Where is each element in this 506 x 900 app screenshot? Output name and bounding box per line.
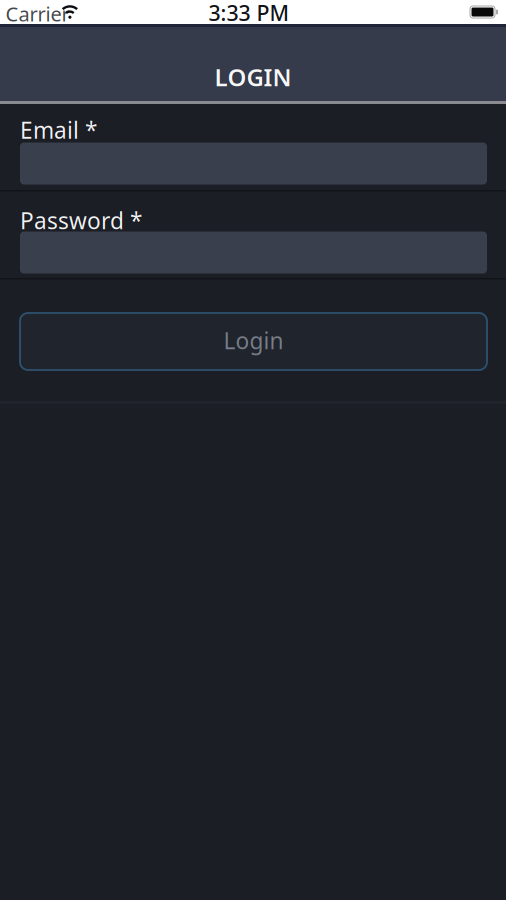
- staticText: Carrier: [5, 0, 69, 27]
- staticText: Password *: [20, 205, 142, 236]
- staticText: Email *: [20, 115, 97, 145]
- staticText: LOGIN: [214, 61, 291, 93]
- button[interactable]: Email field: [20, 142, 487, 184]
- staticText: 3:33 PM: [208, 0, 289, 27]
- button[interactable]: Login: [20, 313, 487, 370]
- staticText: Login: [223, 325, 283, 355]
- button[interactable]: Password field: [20, 231, 487, 273]
